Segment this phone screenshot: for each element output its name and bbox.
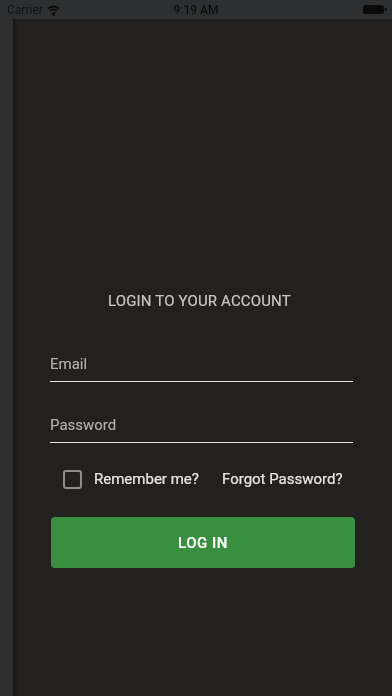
button[interactable]: Password bbox=[50, 410, 353, 444]
button[interactable]: LOG IN bbox=[51, 517, 355, 568]
staticText: LOGIN TO YOUR ACCOUNT bbox=[108, 292, 291, 310]
staticText: Remember me? bbox=[94, 470, 199, 488]
staticText: 9:19 AM bbox=[0, 3, 392, 17]
button[interactable]: Forgot Password? bbox=[222, 468, 343, 490]
staticText: LOG IN bbox=[178, 534, 228, 552]
button[interactable]: Email bbox=[50, 349, 353, 383]
staticText: Email bbox=[50, 355, 88, 373]
staticText: Password bbox=[50, 416, 117, 434]
button[interactable]: Remember me? bbox=[63, 468, 199, 490]
staticText: Forgot Password? bbox=[222, 470, 343, 488]
staticText: Carrier bbox=[7, 3, 43, 17]
